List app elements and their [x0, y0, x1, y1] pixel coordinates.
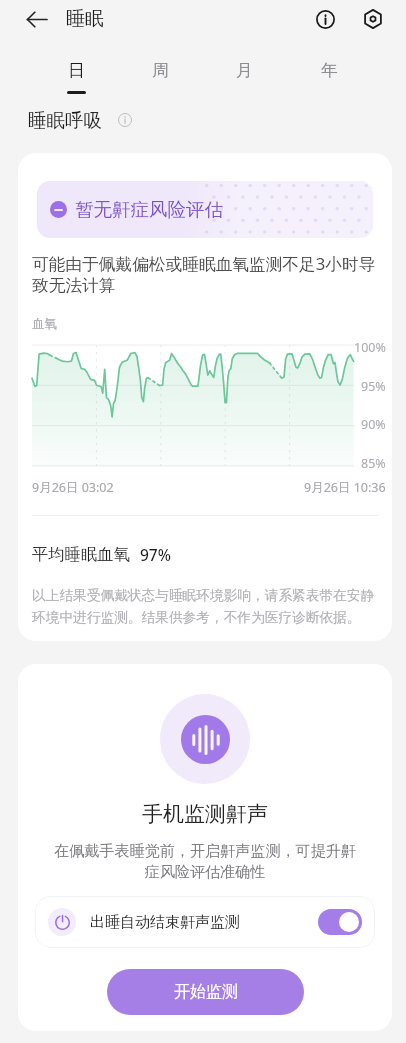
button[interactable]: 年 [287, 37, 372, 96]
staticText: 开始监测 [174, 982, 238, 1002]
staticText: 平均睡眠血氧 [32, 544, 130, 565]
staticText: 9月26日 10:36 [304, 479, 386, 496]
staticText: 在佩戴手表睡觉前，开启鼾声监测，可提升鼾症风险评估准确性 [53, 841, 357, 882]
button[interactable]: About sleep breathing [115, 110, 135, 130]
button[interactable]: 开始监测 [107, 969, 304, 1015]
button[interactable]: 日 [34, 37, 118, 96]
staticText: 日 [68, 60, 85, 81]
staticText: 周 [152, 60, 169, 81]
staticText: 年 [321, 60, 338, 81]
staticText: 暂无鼾症风险评估 [75, 198, 223, 221]
staticText: 可能由于佩戴偏松或睡眠血氧监测不足3小时导致无法计算 [32, 252, 378, 296]
button[interactable]: Settings [358, 4, 388, 34]
staticText: 90% [361, 416, 386, 433]
staticText: 97% [140, 544, 171, 565]
staticText: 出睡自动结束鼾声监测 [90, 913, 240, 932]
staticText: 手机监测鼾声 [142, 801, 268, 827]
staticText: 9月26日 03:02 [32, 479, 114, 496]
staticText: 睡眠呼吸 [28, 109, 102, 132]
button[interactable]: 周 [118, 37, 202, 96]
staticText: 血氧 [32, 316, 57, 332]
button[interactable]: 出睡自动结束鼾声监测 [35, 896, 375, 948]
staticText: 月 [236, 60, 253, 81]
button[interactable]: Back [22, 5, 50, 33]
button[interactable]: Info [310, 4, 340, 34]
staticText: 85% [361, 455, 386, 472]
staticText: 100% [354, 339, 386, 356]
staticText: 95% [361, 378, 386, 395]
button[interactable]: 月 [202, 37, 287, 96]
staticText: 以上结果受佩戴状态与睡眠环境影响，请系紧表带在安静环境中进行监测。结果供参考，不… [32, 587, 378, 626]
staticText: 睡眠 [66, 7, 104, 31]
